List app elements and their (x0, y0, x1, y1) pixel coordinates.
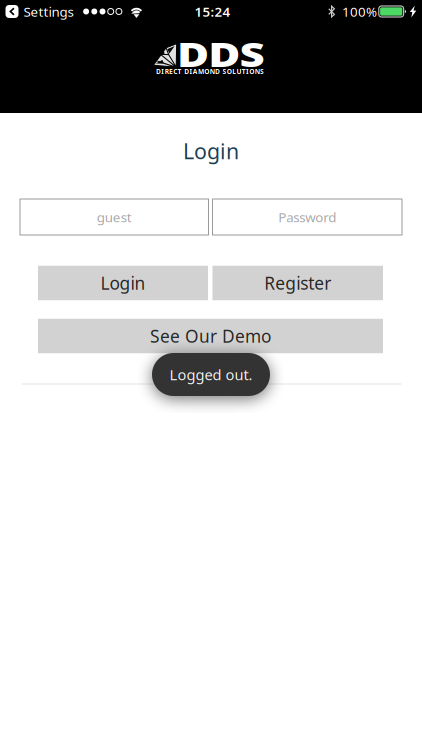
staticText: Login (183, 137, 239, 165)
staticText: Settings (23, 3, 73, 20)
staticText: Register (264, 271, 331, 294)
button[interactable]: guest (20, 199, 208, 235)
staticText: DIRECT DIAMOND SOLUTIONS (156, 67, 264, 76)
staticText: DDS (179, 27, 262, 82)
staticText: guest (97, 208, 132, 226)
button[interactable]: Back to Settings (5, 2, 74, 20)
staticText: Login (100, 271, 145, 294)
button[interactable]: See Our Demo (38, 319, 383, 353)
staticText: 100% (342, 3, 377, 20)
staticText: 15:24 (194, 3, 230, 20)
staticText: Password (278, 208, 336, 226)
button[interactable]: Password (212, 199, 402, 235)
button[interactable]: Login (38, 266, 208, 300)
staticText: Logged out. (169, 365, 252, 384)
staticText: See Our Demo (150, 324, 271, 347)
button[interactable]: Register (212, 266, 383, 300)
